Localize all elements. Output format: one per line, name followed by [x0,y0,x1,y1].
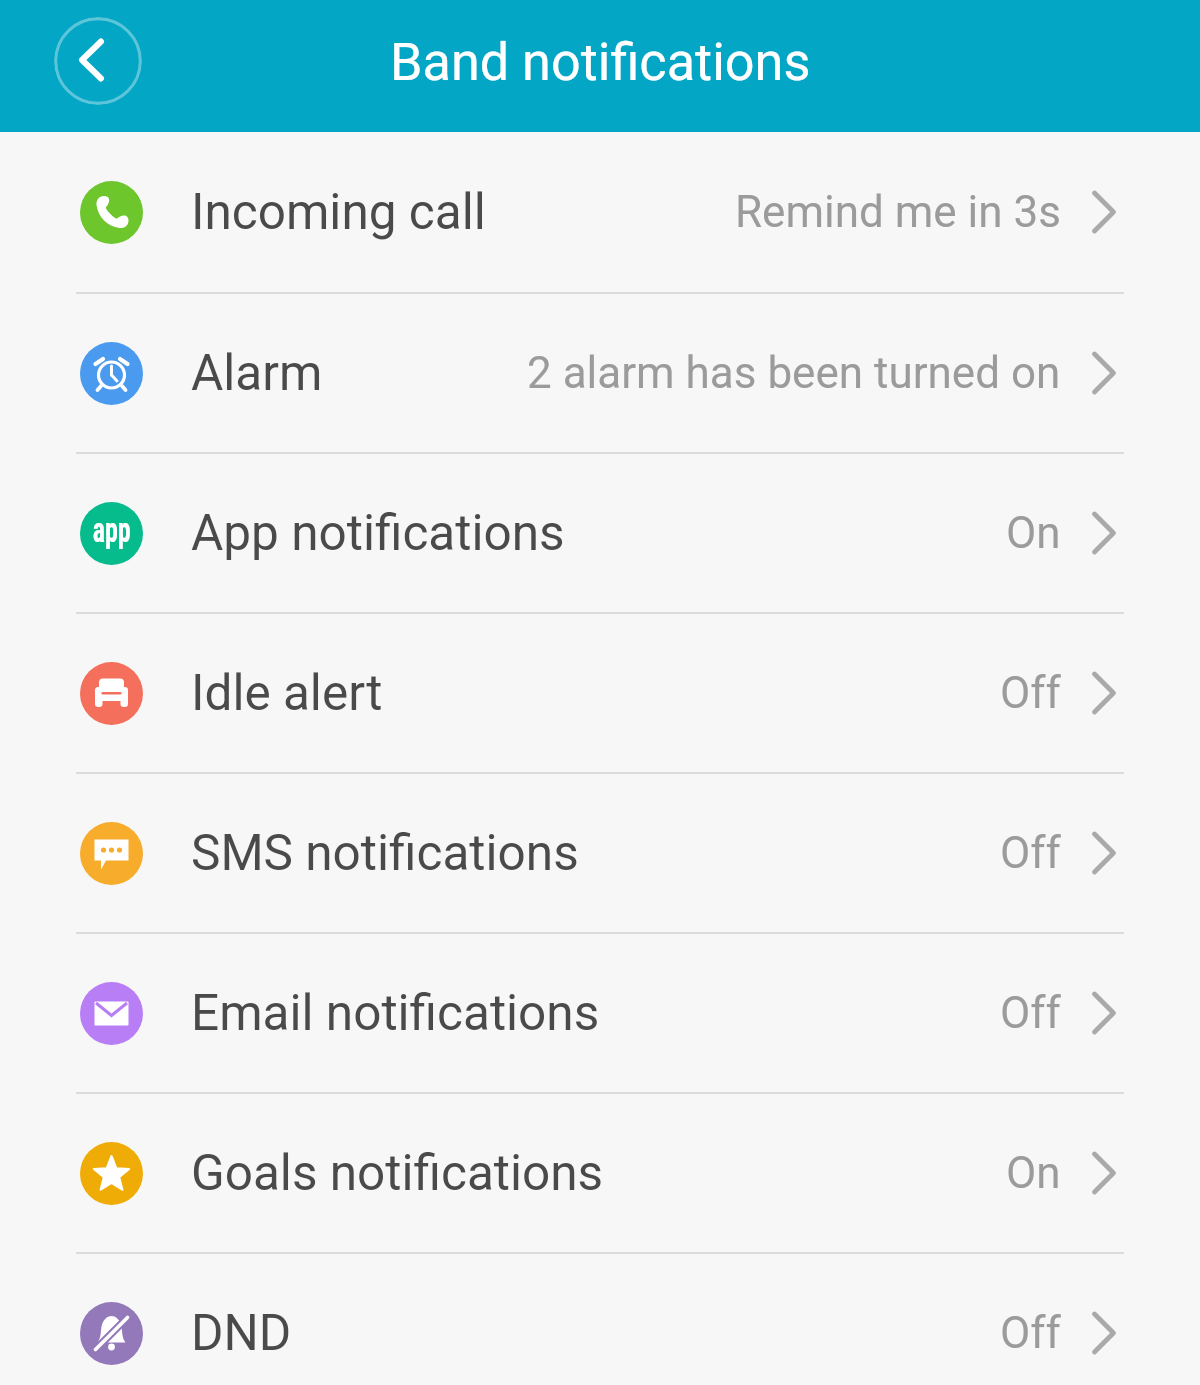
staticText: app [93,510,131,551]
button[interactable]: app [0,454,1200,612]
staticText: 2 alarm has been turned on [527,347,1061,399]
staticText: Goals notifications [191,1144,604,1202]
staticText: Band notifications [390,32,811,93]
button[interactable]: Alarm [0,294,1200,452]
staticText: Off [1000,827,1061,879]
staticText: Email notifications [191,984,600,1042]
staticText: DND [191,1304,292,1362]
button[interactable]: Back [54,17,142,105]
staticText: Off [1000,987,1061,1039]
button[interactable]: Incoming call [0,132,1200,292]
staticText: On [1006,1147,1061,1199]
button[interactable]: DND [0,1254,1200,1385]
staticText: Off [1000,1307,1061,1359]
button[interactable]: SMS notifications [0,774,1200,932]
button[interactable]: Idle alert [0,614,1200,772]
button[interactable]: Email notifications [0,934,1200,1092]
button[interactable]: Goals notifications [0,1094,1200,1252]
staticText: Alarm [191,344,323,402]
staticText: On [1006,507,1061,559]
staticText: Idle alert [191,664,383,722]
staticText: Remind me in 3s [735,186,1061,238]
staticText: Off [1000,667,1061,719]
staticText: Incoming call [191,183,486,241]
staticText: SMS notifications [191,824,579,882]
staticText: App notifications [191,504,565,562]
